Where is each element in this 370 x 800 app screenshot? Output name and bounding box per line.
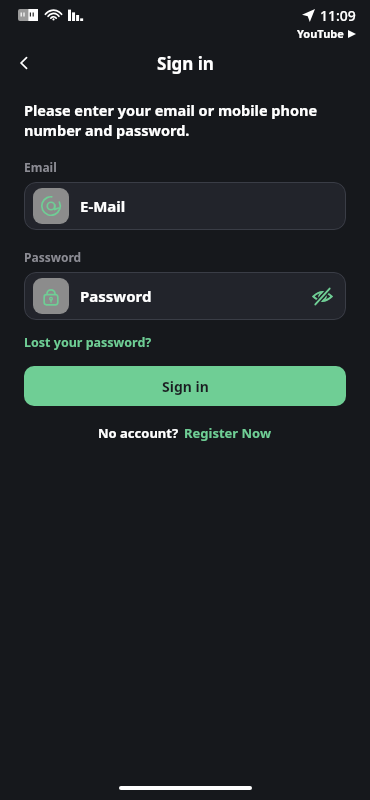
button[interactable]: Back xyxy=(8,47,40,79)
staticText: No account? xyxy=(98,424,179,442)
staticText: Password xyxy=(80,286,152,306)
button[interactable]: Sign in xyxy=(24,366,346,406)
button[interactable]: Register Now xyxy=(184,424,272,442)
staticText: Register Now xyxy=(184,424,272,442)
staticText: 11:09 xyxy=(320,6,356,25)
staticText: Password xyxy=(24,249,82,265)
button[interactable]: Show password xyxy=(307,281,337,311)
staticText: E-Mail xyxy=(80,196,126,216)
button[interactable]: Lost your password? xyxy=(24,334,152,351)
staticText: Please enter your email or mobile phone … xyxy=(24,100,346,140)
staticText: YouTube xyxy=(297,26,344,41)
staticText: Lost your password? xyxy=(24,334,152,351)
staticText: Sign in xyxy=(162,377,209,396)
staticText: Sign in xyxy=(157,52,214,75)
button[interactable]: E-Mail xyxy=(24,182,346,230)
button[interactable]: Password xyxy=(24,272,346,320)
staticText: Email xyxy=(24,159,57,175)
